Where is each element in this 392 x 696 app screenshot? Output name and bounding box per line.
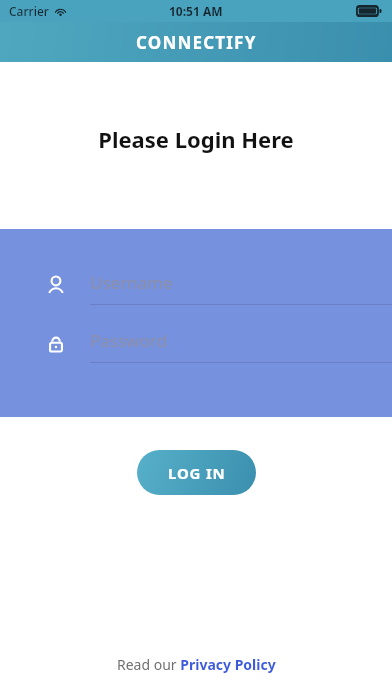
button[interactable]: LOG IN bbox=[137, 450, 256, 495]
staticText: Read our Privacy Policy bbox=[117, 655, 276, 674]
staticText: Carrier bbox=[9, 3, 49, 19]
button[interactable]: Read our Privacy Policy bbox=[117, 655, 276, 674]
staticText: Please Login Here bbox=[98, 124, 294, 154]
other: Password field bbox=[44, 332, 68, 356]
staticText: Password bbox=[90, 329, 167, 352]
button[interactable]: Username field bbox=[0, 267, 392, 305]
staticText: Username bbox=[90, 271, 173, 294]
staticText: 10:51 AM bbox=[169, 3, 223, 19]
staticText: LOG IN bbox=[168, 463, 226, 483]
staticText: CONNECTIFY bbox=[136, 31, 257, 54]
button[interactable]: Password field bbox=[0, 325, 392, 363]
other: Username field bbox=[44, 274, 68, 298]
